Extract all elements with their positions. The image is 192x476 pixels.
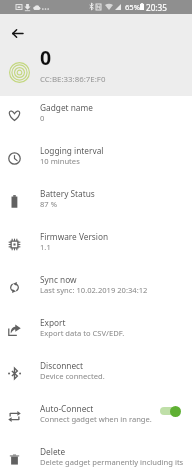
- button[interactable]: Gadget name: [0, 96, 192, 139]
- staticText: 1.1: [40, 242, 51, 252]
- button[interactable]: Battery Status: [0, 182, 192, 225]
- button[interactable]: Disconnect: [0, 354, 192, 397]
- staticText: Delete gadget permanently including its: [40, 457, 184, 467]
- staticText: 10 minutes: [40, 156, 80, 166]
- button[interactable]: Firmware Version: [0, 225, 192, 268]
- staticText: 0: [40, 113, 45, 123]
- staticText: Export data to CSV/EDF.: [40, 328, 125, 338]
- staticText: Delete: [40, 446, 66, 457]
- staticText: Export: [40, 317, 66, 328]
- staticText: CC:BE:33:86:7E:F0: [40, 74, 106, 85]
- staticText: 20:35: [146, 2, 167, 13]
- staticText: Battery Status: [40, 188, 95, 199]
- staticText: Gadget name: [40, 102, 93, 113]
- staticText: 0: [40, 44, 52, 71]
- button[interactable]: Logging interval: [0, 139, 192, 182]
- staticText: 65%: [125, 2, 140, 12]
- staticText: Logging interval: [40, 145, 104, 156]
- button[interactable]: Auto-Connect: [0, 397, 192, 440]
- button[interactable]: Delete: [0, 440, 192, 476]
- staticText: Last sync: 10.02.2019 20:34:12: [40, 285, 148, 295]
- staticText: Sync now: [40, 274, 77, 285]
- button[interactable]: Export: [0, 311, 192, 354]
- button[interactable]: Auto-Connect toggle: [156, 402, 186, 422]
- staticText: Connect gadget when in range.: [40, 414, 152, 424]
- staticText: 87 %: [40, 199, 57, 209]
- staticText: Auto-Connect: [40, 403, 94, 414]
- staticText: Disconnect: [40, 360, 84, 371]
- button[interactable]: Back: [4, 20, 30, 46]
- staticText: Device connected.: [40, 371, 105, 381]
- staticText: Firmware Version: [40, 231, 109, 242]
- button[interactable]: Sync now: [0, 268, 192, 311]
